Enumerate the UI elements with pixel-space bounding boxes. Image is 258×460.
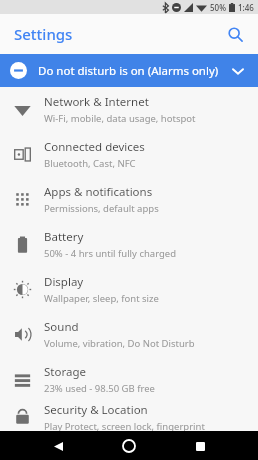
staticText: Storage <box>44 364 86 380</box>
staticText: Security & Location <box>44 402 148 418</box>
button[interactable]: Storage <box>0 357 258 402</box>
button[interactable]: Security & Location <box>0 402 258 431</box>
button[interactable]: Connected devices <box>0 132 258 177</box>
staticText: Bluetooth, Cast, NFC <box>44 157 136 170</box>
staticText: 1:46 <box>238 2 254 13</box>
button[interactable]: Apps & notifications <box>0 177 258 222</box>
button[interactable]: Battery <box>0 222 258 267</box>
button[interactable]: Search settings <box>220 19 250 49</box>
button[interactable]: Network & Internet <box>0 87 258 132</box>
staticText: Apps & notifications <box>44 184 153 200</box>
staticText: Volume, vibration, Do Not Disturb <box>44 337 195 350</box>
staticText: Battery <box>44 229 84 245</box>
button[interactable]: Back <box>44 432 72 460</box>
staticText: 23% used - 98.50 GB free <box>44 382 155 395</box>
staticText: Wallpaper, sleep, font size <box>44 292 159 305</box>
staticText: Connected devices <box>44 139 145 155</box>
staticText: Permissions, default apps <box>44 202 159 215</box>
button[interactable]: Recent apps <box>186 432 214 460</box>
other: Expand <box>228 61 248 81</box>
staticText: Play Protect, screen lock, fingerprint <box>44 420 205 431</box>
staticText: Network & Internet <box>44 94 149 110</box>
staticText: Settings <box>14 24 73 44</box>
staticText: 50% <box>210 2 226 13</box>
staticText: Display <box>44 274 84 290</box>
button[interactable]: Display <box>0 267 258 312</box>
button[interactable]: Sound <box>0 312 258 357</box>
staticText: 50% - 4 hrs until fully charged <box>44 247 177 260</box>
button[interactable]: Do not disturb is on (Alarms only) <box>0 54 258 87</box>
staticText: Wi-Fi, mobile, data usage, hotspot <box>44 112 196 125</box>
button[interactable]: Home <box>115 432 143 460</box>
staticText: Sound <box>44 319 79 335</box>
staticText: Do not disturb is on (Alarms only) <box>38 63 219 79</box>
